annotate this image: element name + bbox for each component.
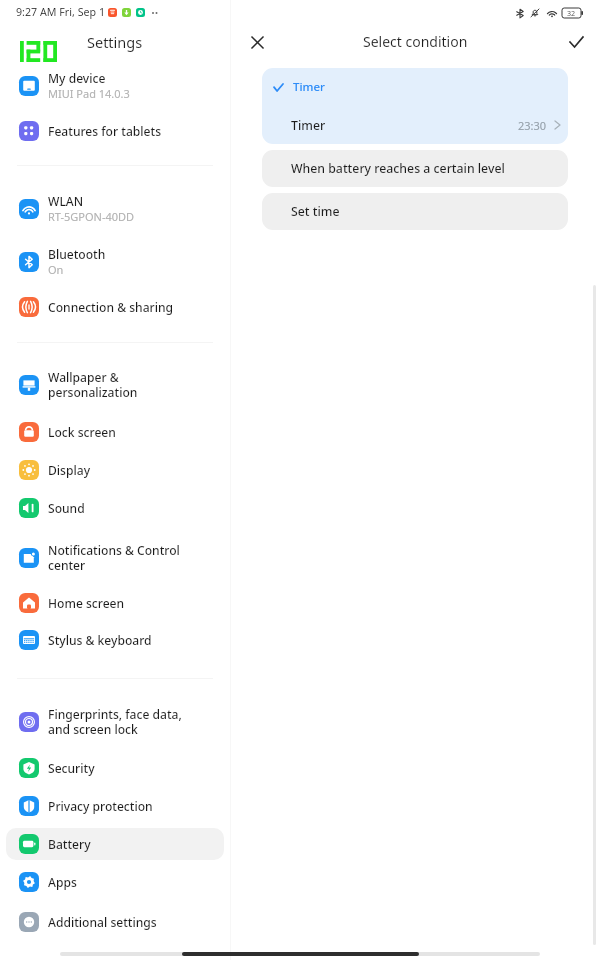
button[interactable]: Timer <box>262 68 568 106</box>
staticText: Select condition <box>363 32 468 51</box>
staticText: 23:30 <box>518 118 547 133</box>
staticText: Settings <box>87 32 143 52</box>
button[interactable]: WLAN <box>6 188 224 228</box>
button[interactable]: Confirm <box>564 30 588 54</box>
button[interactable]: Features for tablets <box>6 115 224 147</box>
staticText: 32 <box>567 8 576 18</box>
button[interactable]: Home screen <box>6 587 224 619</box>
staticText: Battery <box>48 836 91 852</box>
staticText: Home screen <box>48 595 125 611</box>
button[interactable]: Close <box>245 30 269 54</box>
button[interactable]: Sound <box>6 492 224 524</box>
staticText: Additional settings <box>48 914 157 930</box>
staticText: Bluetooth <box>48 246 106 262</box>
button[interactable]: Additional settings <box>6 906 224 938</box>
button[interactable]: Stylus & keyboard <box>6 624 224 656</box>
button[interactable]: Lock screen <box>6 416 224 448</box>
staticText: Timer <box>293 79 325 95</box>
staticText: Lock screen <box>48 424 116 440</box>
button[interactable]: When battery reaches a certain level <box>262 150 568 187</box>
staticText: Set time <box>291 203 340 220</box>
button[interactable]: Connection & sharing <box>6 291 224 323</box>
button[interactable]: Set time <box>262 193 568 230</box>
staticText: Apps <box>48 874 77 890</box>
staticText: Timer <box>291 117 326 134</box>
staticText: MIUI Pad 14.0.3 <box>48 86 130 101</box>
staticText: Stylus & keyboard <box>48 632 152 648</box>
button[interactable]: Notifications & Control center <box>6 537 224 579</box>
staticText: Notifications & Control center <box>48 542 180 574</box>
staticText: 9:27 AM Fri, Sep 1 <box>16 5 106 20</box>
staticText: Display <box>48 462 91 478</box>
staticText: RT-5GPON-40DD <box>48 209 135 224</box>
staticText: WLAN <box>48 193 84 209</box>
staticText: Privacy protection <box>48 798 153 814</box>
staticText: Security <box>48 760 95 776</box>
staticText: Sound <box>48 500 85 516</box>
staticText: My device <box>48 70 106 86</box>
button[interactable]: Wallpaper & personalization <box>6 364 224 406</box>
staticText: Features for tablets <box>48 123 162 139</box>
button[interactable]: My device <box>6 65 224 105</box>
button[interactable]: Privacy protection <box>6 790 224 822</box>
button[interactable]: Display <box>6 454 224 486</box>
staticText: On <box>48 262 64 277</box>
button[interactable]: Timer <box>262 106 568 144</box>
staticText: Fingerprints, face data, and screen lock <box>48 706 182 738</box>
staticText: Connection & sharing <box>48 299 174 315</box>
button[interactable]: Fingerprints, face data, and screen lock <box>6 701 224 743</box>
button[interactable]: Security <box>6 752 224 784</box>
button[interactable]: Bluetooth <box>6 241 224 281</box>
staticText: Wallpaper & personalization <box>48 369 138 401</box>
button[interactable]: Battery <box>6 828 224 860</box>
staticText: When battery reaches a certain level <box>291 160 505 177</box>
button[interactable]: Apps <box>6 866 224 898</box>
